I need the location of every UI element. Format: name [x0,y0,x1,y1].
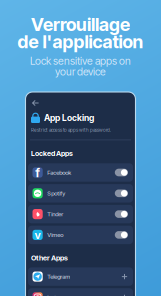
staticText: f [35,166,40,180]
staticText: Restrict access to apps with password. [31,127,111,133]
button[interactable]: Instagram [28,288,133,296]
staticText: v [35,229,41,242]
staticText: Spotify [47,190,65,197]
staticText: App Locking [44,112,94,123]
staticText: Verrouillage [31,13,130,35]
staticText: Vimeo [47,231,63,238]
staticText: Locked Apps [31,149,73,158]
staticText: de l'application [17,31,143,53]
staticText: Instagram [47,294,72,296]
staticText: Tinder [47,211,63,218]
staticText: Other Apps [31,253,68,262]
staticText: Facebook [47,169,71,176]
button[interactable]: Telegram [28,267,133,286]
button[interactable]: v [28,226,133,244]
staticText: your device [55,65,106,78]
button[interactable]: f [28,163,133,182]
staticText: Lock sensitive apps on [30,55,131,67]
button[interactable]: Back [29,98,41,108]
button[interactable]: Spotify [28,184,133,202]
staticText: Telegram [47,273,70,280]
button[interactable]: Tinder [28,205,133,223]
